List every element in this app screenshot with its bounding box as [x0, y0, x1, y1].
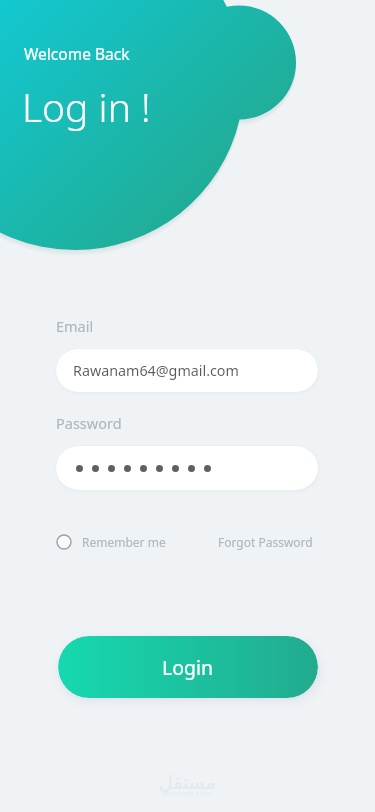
staticText: مستقل — [159, 771, 216, 793]
staticText: Password — [56, 413, 122, 433]
other: Mostaql watermark — [159, 771, 216, 803]
button[interactable]: Remember me — [56, 534, 166, 550]
staticText: Remember me — [82, 534, 166, 550]
button[interactable]: Login — [58, 636, 318, 698]
staticText: mostaql.com — [162, 788, 213, 798]
button[interactable]: Rawanam64@gmail.com — [56, 349, 318, 392]
staticText: Email — [56, 316, 94, 336]
button[interactable]: Forgot Password — [218, 534, 318, 550]
button[interactable] — [56, 446, 318, 490]
staticText: Log in ! — [22, 80, 151, 133]
staticText: Welcome Back — [24, 43, 130, 64]
staticText: Login — [162, 654, 214, 681]
staticText: Forgot Password — [218, 534, 313, 550]
staticText: Rawanam64@gmail.com — [73, 361, 239, 380]
